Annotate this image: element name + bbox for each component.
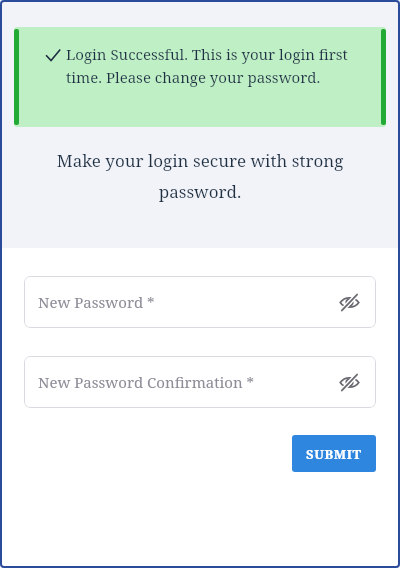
button[interactable]: New Password * xyxy=(24,276,376,328)
button[interactable]: Show password xyxy=(336,289,362,315)
staticText: New Password * xyxy=(38,292,155,312)
staticText: Login Successful. This is your login fir… xyxy=(66,44,364,87)
staticText: New Password Confirmation * xyxy=(38,372,255,392)
staticText: Make your login secure with strong passw… xyxy=(34,149,366,203)
button[interactable]: New Password Confirmation * xyxy=(24,356,376,408)
button[interactable]: Show password xyxy=(336,369,362,395)
button[interactable]: SUBMIT xyxy=(292,435,376,472)
staticText: SUBMIT xyxy=(306,445,362,463)
